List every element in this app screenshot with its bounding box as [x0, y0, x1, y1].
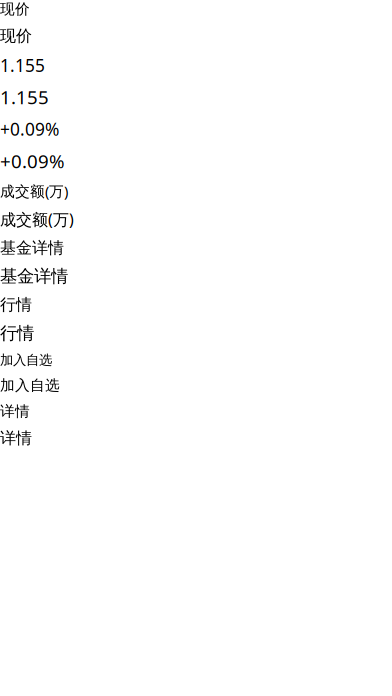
staticText: 行情: [0, 323, 34, 344]
staticText: 现价: [0, 26, 32, 46]
staticText: 详情: [0, 428, 32, 448]
staticText: 基金详情: [0, 238, 64, 258]
staticText: +0.09%: [0, 117, 59, 140]
staticText: 加入自选: [0, 376, 60, 394]
staticText: 基金详情: [0, 266, 68, 287]
staticText: 1.155: [0, 54, 45, 77]
staticText: 现价: [0, 0, 30, 18]
staticText: 加入自选: [0, 352, 52, 368]
staticText: 成交额(万): [0, 209, 74, 230]
staticText: 详情: [0, 402, 30, 420]
staticText: +0.09%: [0, 148, 65, 173]
staticText: 行情: [0, 295, 32, 315]
staticText: 成交额(万): [0, 181, 68, 201]
staticText: 1.155: [0, 85, 49, 109]
